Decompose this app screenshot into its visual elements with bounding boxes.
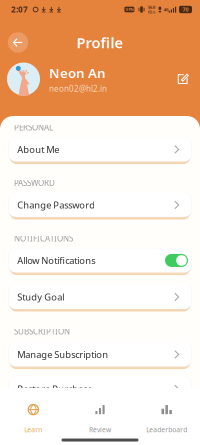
staticText: 4G	[164, 7, 169, 12]
staticText: Study Goal	[17, 291, 64, 303]
button[interactable]: Change Password	[0, 192, 200, 220]
staticText: Change Password	[17, 199, 95, 211]
staticText: Leaderboard	[146, 425, 187, 434]
button[interactable]: Allow Notifications	[0, 248, 200, 275]
staticText: KB/s	[148, 9, 156, 14]
staticText: Allow Notifications	[17, 254, 95, 267]
button[interactable]: Restore Purchase	[0, 376, 200, 404]
staticText: VPN	[125, 7, 133, 12]
staticText: PERSONAL	[14, 122, 53, 133]
button[interactable]: Back	[5, 29, 31, 55]
button[interactable]: Learn	[0, 388, 67, 435]
staticText: 2:07	[11, 4, 28, 15]
button[interactable]: Manage Subscription	[0, 342, 200, 369]
staticText: Profile	[76, 33, 123, 52]
button[interactable]: Review	[67, 388, 133, 435]
button[interactable]: Edit profile	[173, 69, 193, 89]
staticText: 56.0	[148, 4, 155, 10]
staticText: SUBSCRIPTION	[14, 326, 70, 337]
staticText: Neon An	[49, 64, 106, 82]
button[interactable]: Leaderboard	[133, 388, 200, 435]
staticText: NOTIFICATIONS	[14, 233, 73, 244]
staticText: PASSWORD	[14, 178, 55, 188]
button[interactable]: Study Goal	[0, 284, 200, 312]
staticText: 70	[182, 6, 188, 13]
staticText: Review	[89, 425, 111, 434]
staticText: neon02@hl2.in	[49, 83, 107, 94]
staticText: About Me	[17, 143, 59, 156]
button[interactable]: About Me	[0, 137, 200, 164]
staticText: Manage Subscription	[17, 348, 108, 361]
staticText: Restore Purchase	[17, 383, 92, 395]
staticText: Learn	[24, 425, 42, 434]
